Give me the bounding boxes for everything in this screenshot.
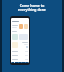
button[interactable] [12,50,28,53]
button[interactable] [12,54,28,57]
button[interactable] [12,34,18,40]
button[interactable] [12,20,28,23]
button[interactable] [12,58,28,61]
staticText: Come home to everything done [18,3,46,12]
button[interactable] [19,24,23,29]
button[interactable] [24,24,28,29]
